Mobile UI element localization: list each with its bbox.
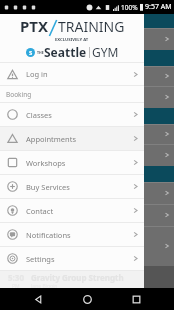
staticText: Booking	[6, 90, 32, 99]
button[interactable]: Classes	[0, 103, 144, 126]
other: Open	[132, 183, 139, 190]
other: Open	[132, 207, 139, 214]
button[interactable]: Workshops	[0, 151, 144, 174]
button[interactable]: Contact	[0, 199, 144, 222]
staticText: PTX	[20, 16, 49, 36]
other: Open	[132, 255, 139, 262]
staticText: Appointments	[26, 134, 132, 144]
staticText: Contact	[26, 206, 132, 216]
other: Open	[132, 71, 139, 78]
staticText: 100%	[121, 3, 138, 12]
staticText: THE	[37, 50, 44, 55]
button[interactable]: Appointments	[0, 127, 144, 150]
staticText: S	[29, 49, 33, 57]
staticText: EXCLUSIVELY AT	[55, 37, 89, 43]
button[interactable]: 6:15	[0, 290, 144, 309]
staticText: Buy Services	[26, 182, 132, 192]
other: Open	[132, 159, 139, 166]
other: Open	[132, 111, 139, 118]
other: Open	[132, 231, 139, 238]
button[interactable]: Back	[27, 288, 49, 310]
button[interactable]: Home	[76, 288, 98, 310]
staticText: Seattle	[44, 44, 87, 60]
staticText: Log in	[26, 69, 132, 79]
button[interactable]: Settings	[0, 247, 144, 270]
staticText: Settings	[26, 254, 132, 264]
staticText: 9:57 AM	[145, 2, 172, 12]
staticText: Classes	[26, 110, 132, 120]
staticText: Notifications	[26, 230, 132, 240]
staticText: Workshops	[26, 158, 132, 168]
staticText: Gravity Group Strength	[31, 272, 124, 283]
button[interactable]: 5:30	[0, 271, 144, 290]
staticText: Barre	[31, 294, 53, 305]
staticText: GYM	[92, 44, 119, 60]
button[interactable]: Log in	[0, 63, 144, 85]
button[interactable]: Notifications	[0, 223, 144, 246]
button[interactable]: Recents	[125, 288, 147, 310]
staticText: 5:30	[8, 272, 24, 283]
other: Open	[132, 135, 139, 142]
staticText: Jane Biggin	[31, 283, 58, 290]
button[interactable]: Buy Services	[0, 175, 144, 198]
staticText: PM	[12, 283, 20, 290]
staticText: TRAINING	[58, 17, 125, 36]
